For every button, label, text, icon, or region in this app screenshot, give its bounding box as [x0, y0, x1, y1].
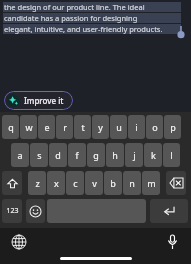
staticText: h	[112, 149, 118, 161]
staticText: y	[98, 121, 103, 133]
button[interactable]: Backspace	[166, 171, 186, 195]
button[interactable]: n	[123, 171, 141, 195]
button[interactable]: e	[38, 115, 55, 139]
button[interactable]: h	[106, 143, 124, 167]
button[interactable]: f	[68, 143, 86, 167]
button[interactable]: z	[28, 171, 46, 195]
button[interactable]: r	[56, 115, 73, 139]
button[interactable]: q	[2, 115, 19, 139]
button[interactable]: 123	[2, 199, 22, 223]
button[interactable]: u	[110, 115, 127, 139]
staticText: a	[17, 149, 23, 161]
button[interactable]: Shift	[2, 171, 22, 195]
button[interactable]: Enter	[150, 199, 188, 223]
button[interactable]: p	[164, 115, 181, 139]
staticText: w	[25, 121, 33, 133]
button[interactable]: Voice input	[161, 231, 183, 253]
button[interactable]: g	[87, 143, 105, 167]
button[interactable]: b	[104, 171, 122, 195]
button[interactable]: x	[47, 171, 65, 195]
staticText: m	[147, 177, 156, 189]
button[interactable]: Emoji	[26, 199, 45, 223]
staticText: elegant, intuitive, and user-friendly pr…	[4, 24, 163, 34]
staticText: k	[151, 149, 156, 161]
button[interactable]: c	[66, 171, 84, 195]
staticText: n	[129, 177, 135, 189]
button[interactable]: s	[30, 143, 48, 167]
button[interactable]: Improve it	[4, 91, 73, 110]
staticText: b	[110, 177, 116, 189]
staticText: j	[133, 149, 136, 161]
staticText: i	[135, 121, 138, 133]
button[interactable]: d	[49, 143, 67, 167]
button[interactable]: Change language	[8, 231, 30, 253]
button[interactable]: k	[144, 143, 162, 167]
staticText: v	[92, 177, 97, 189]
staticText: c	[73, 177, 78, 189]
button[interactable]: m	[142, 171, 160, 195]
staticText: the design of our product line. The idea…	[4, 2, 145, 12]
staticText: d	[55, 149, 61, 161]
staticText: g	[93, 149, 99, 161]
staticText: p	[170, 121, 176, 133]
button[interactable]: j	[125, 143, 143, 167]
staticText: u	[116, 121, 122, 133]
staticText: q	[8, 121, 14, 133]
staticText: s	[37, 149, 42, 161]
button[interactable]: o	[146, 115, 163, 139]
staticText: e	[44, 121, 50, 133]
button[interactable]: t	[74, 115, 91, 139]
button[interactable]: w	[20, 115, 37, 139]
staticText: candidate has a passion for designing	[4, 13, 138, 23]
staticText: o	[152, 121, 158, 133]
staticText: f	[75, 149, 79, 161]
staticText: z	[35, 177, 40, 189]
staticText: x	[54, 177, 59, 189]
staticText: Improve it	[24, 95, 64, 106]
staticText: t	[81, 121, 85, 133]
button[interactable]: v	[85, 171, 103, 195]
button[interactable]: l	[163, 143, 180, 167]
staticText: 123	[6, 206, 19, 216]
staticText: l	[170, 149, 173, 161]
button[interactable]: i	[128, 115, 145, 139]
staticText: r	[63, 121, 67, 133]
button[interactable]: a	[11, 143, 29, 167]
button[interactable]: y	[92, 115, 109, 139]
